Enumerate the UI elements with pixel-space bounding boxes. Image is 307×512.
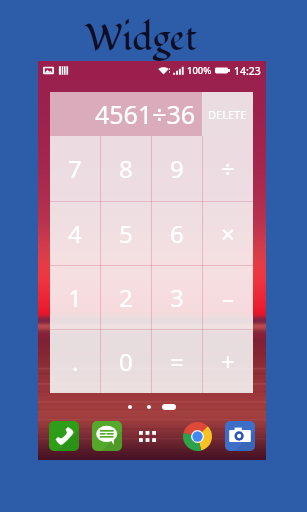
button[interactable]: 4 [50, 201, 100, 265]
button[interactable]: ÷ [202, 136, 253, 201]
button[interactable]: 6 [151, 201, 202, 265]
button[interactable]: 1 [50, 265, 100, 329]
staticText: . [72, 345, 79, 378]
button[interactable]: Phone [49, 421, 79, 451]
staticText: 0 [119, 345, 133, 378]
staticText: 6 [170, 217, 184, 250]
staticText: 1 [68, 281, 82, 314]
staticText: 9 [170, 152, 184, 185]
staticText: 5 [119, 217, 133, 250]
button[interactable]: Chrome [182, 421, 212, 451]
button[interactable]: Camera [225, 421, 255, 451]
staticText: 14:23 [234, 64, 261, 78]
button[interactable]: DELETE [202, 92, 253, 136]
button[interactable]: Messages [92, 421, 122, 451]
button[interactable]: + [202, 329, 253, 393]
button[interactable]: 9 [151, 136, 202, 201]
button[interactable]: 8 [100, 136, 151, 201]
button[interactable]: × [202, 201, 253, 265]
button[interactable]: 7 [50, 136, 100, 201]
staticText: – [222, 281, 234, 314]
button[interactable] [128, 405, 132, 409]
button[interactable]: 4561÷36 [50, 92, 196, 136]
staticText: + [221, 345, 235, 378]
button[interactable]: 0 [100, 329, 151, 393]
button[interactable]: All apps [132, 421, 162, 451]
staticText: 4 [68, 217, 82, 250]
staticText: 8 [119, 152, 133, 185]
staticText: = [170, 345, 184, 378]
button[interactable] [162, 404, 176, 410]
button[interactable]: 3 [151, 265, 202, 329]
button[interactable] [147, 405, 151, 409]
staticText: Widget [85, 14, 197, 64]
staticText: 100% [187, 64, 212, 77]
staticText: × [221, 217, 235, 250]
button[interactable]: = [151, 329, 202, 393]
staticText: 7 [68, 152, 82, 185]
staticText: 3 [170, 281, 184, 314]
staticText: ÷ [221, 152, 235, 185]
staticText: DELETE [208, 107, 247, 122]
button[interactable]: – [202, 265, 253, 329]
staticText: 4561÷36 [95, 97, 196, 131]
button[interactable]: 2 [100, 265, 151, 329]
button[interactable]: 5 [100, 201, 151, 265]
button[interactable]: . [50, 329, 100, 393]
staticText: 2 [119, 281, 133, 314]
